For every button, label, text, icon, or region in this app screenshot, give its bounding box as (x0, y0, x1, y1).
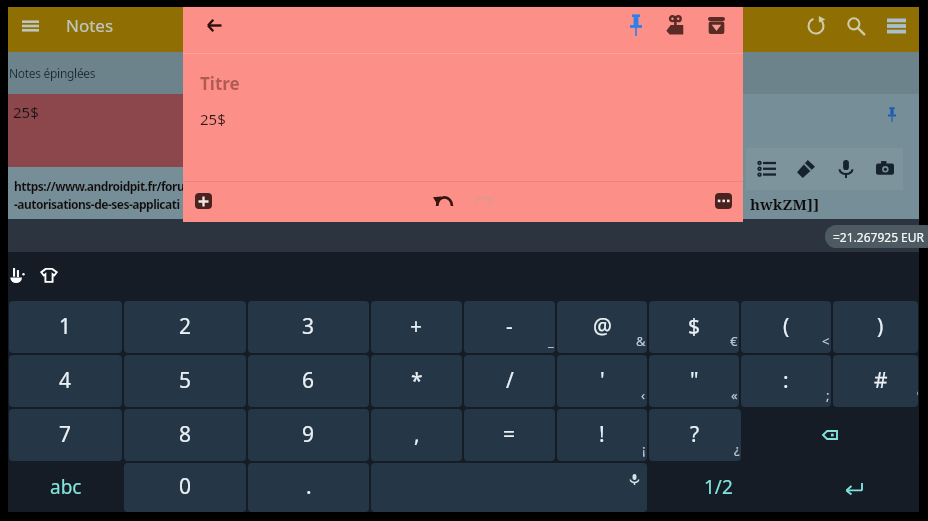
button[interactable]: Handwriting input (1, 259, 33, 291)
staticText: « (731, 386, 738, 404)
button[interactable]: Enter (790, 463, 918, 512)
button[interactable]: New drawing (786, 149, 826, 189)
button[interactable]: / (464, 355, 555, 407)
staticText: 1/2 (704, 474, 733, 500)
button[interactable]: https://www.androidpit.fr/forum (8, 167, 463, 219)
button[interactable]: Unpin note (881, 103, 903, 125)
button[interactable]: 7 (9, 409, 122, 461)
staticText: 7 (59, 420, 72, 449)
button[interactable]: Pin note (616, 5, 656, 45)
staticText: 2 (179, 312, 192, 341)
staticText: ( (783, 312, 790, 341)
staticText: + (410, 312, 423, 341)
button[interactable]: 3 (248, 301, 369, 353)
staticText: # (874, 366, 888, 395)
staticText: ' (600, 366, 605, 395)
button[interactable]: # (833, 355, 918, 407)
staticText: = (503, 420, 516, 449)
button[interactable]: 2 (124, 301, 246, 353)
button[interactable]: Keyboard theme (33, 259, 65, 291)
button[interactable]: Back (194, 5, 234, 45)
staticText: https://www.androidpit.fr/forum (14, 178, 196, 194)
staticText: Notes (66, 14, 114, 37)
staticText: @ (593, 312, 612, 341)
staticText: =21.267925 EUR (833, 229, 925, 245)
button[interactable]: . (248, 463, 369, 512)
button[interactable]: Archive (696, 5, 736, 45)
button[interactable]: * (371, 355, 462, 407)
button[interactable]: =21.267925 EUR (825, 225, 928, 248)
staticText: abc (50, 474, 82, 500)
button[interactable]: Undo (427, 185, 459, 217)
button[interactable]: Add reminder (655, 5, 695, 45)
button[interactable]: More options (715, 193, 732, 209)
staticText: & (636, 332, 646, 350)
staticText: ¿ (734, 440, 740, 458)
button[interactable]: = (464, 409, 555, 461)
button[interactable]: Unpin note (463, 94, 919, 219)
staticText: 0 (179, 472, 192, 501)
button[interactable]: Take photo (866, 149, 903, 189)
staticText: ¡ (642, 440, 646, 458)
button[interactable]: 0 (124, 463, 246, 512)
button[interactable]: Open navigation drawer (8, 7, 52, 44)
staticText: $ (688, 312, 701, 341)
staticText: - (506, 312, 513, 341)
button[interactable]: 9 (248, 409, 369, 461)
button[interactable]: ? (649, 409, 741, 461)
staticText: Titre (200, 72, 240, 95)
button[interactable]: Change view (876, 7, 916, 44)
button[interactable]: Space (371, 463, 647, 512)
button[interactable]: 1/2 (649, 463, 788, 512)
button[interactable]: abc (9, 463, 122, 512)
staticText: < (822, 332, 830, 350)
staticText: _ (548, 332, 554, 350)
staticText: ; (826, 386, 830, 404)
button[interactable]: 4 (9, 355, 122, 407)
button[interactable]: + (371, 301, 462, 353)
staticText: " (690, 366, 699, 395)
staticText: . (306, 472, 312, 501)
staticText: , (414, 420, 420, 449)
button[interactable]: 6 (248, 355, 369, 407)
staticText: ? (690, 420, 700, 449)
button[interactable]: , (371, 409, 462, 461)
staticText: : (783, 366, 789, 395)
staticText: 25$ (13, 102, 39, 122)
button[interactable]: Refresh (796, 7, 836, 44)
staticText: ! (599, 420, 605, 449)
button[interactable]: @ (557, 301, 647, 353)
button[interactable]: : (741, 355, 831, 407)
button[interactable]: 5 (124, 355, 246, 407)
staticText: 3 (302, 312, 315, 341)
staticText: 1 (59, 312, 72, 341)
button[interactable]: 1 (9, 301, 122, 353)
button[interactable]: Redo (468, 185, 500, 217)
button[interactable]: 8 (124, 409, 246, 461)
staticText: * (411, 366, 423, 395)
button[interactable]: New list (748, 150, 786, 188)
button[interactable]: ) (833, 301, 918, 353)
staticText: -autorisations-de-ses-applicati (14, 196, 180, 212)
button[interactable]: Search (836, 7, 876, 44)
button[interactable]: ! (557, 409, 647, 461)
staticText: hwkZM]] (750, 194, 820, 214)
staticText: Notes épinglées (9, 65, 96, 81)
button[interactable]: - (464, 301, 555, 353)
button[interactable]: 25$ (8, 94, 463, 167)
staticText: 4 (59, 366, 72, 395)
button[interactable]: ( (741, 301, 831, 353)
staticText: 5 (179, 366, 192, 395)
button[interactable]: ' (557, 355, 647, 407)
button[interactable]: Add attachment (195, 193, 212, 209)
staticText: 8 (179, 420, 192, 449)
staticText: º (917, 386, 918, 404)
staticText: ) (877, 312, 884, 341)
button[interactable]: Backspace (743, 409, 917, 461)
button[interactable]: New voice note (826, 149, 866, 189)
button[interactable]: $ (649, 301, 739, 353)
staticText: 9 (302, 420, 315, 449)
staticText: ‹ (641, 386, 646, 404)
staticText: 6 (302, 366, 315, 395)
button[interactable]: " (649, 355, 739, 407)
